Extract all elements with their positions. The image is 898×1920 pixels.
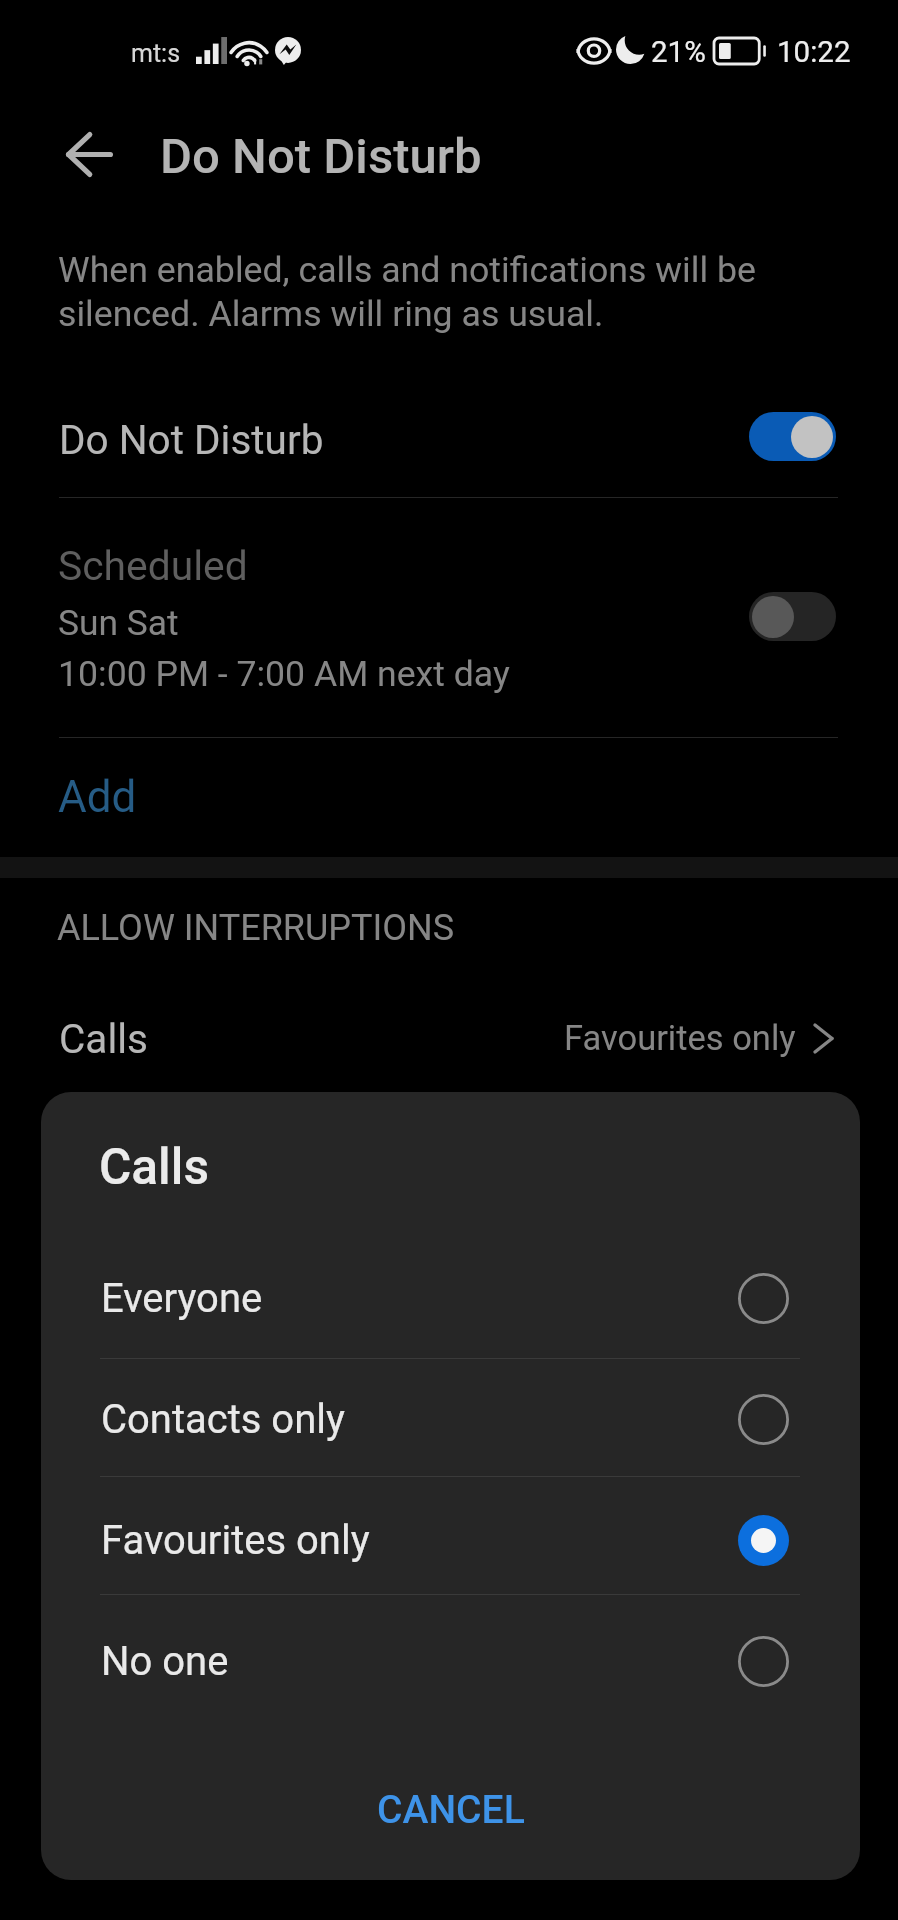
staticText: mt:s [131, 39, 181, 68]
button[interactable]: Schedule switch [749, 592, 836, 641]
staticText: Calls [99, 1138, 210, 1196]
staticText: Scheduled [58, 542, 248, 590]
staticText: CANCEL [377, 1787, 525, 1833]
button[interactable]: Contacts only [41, 1361, 860, 1477]
button[interactable]: Calls [0, 988, 898, 1088]
staticText: 10:00 PM - 7:00 AM next day [58, 653, 510, 695]
button[interactable]: Everyone [41, 1240, 860, 1356]
staticText: Sun Sat [58, 602, 179, 643]
staticText: Contacts only [101, 1396, 345, 1443]
staticText: 10:22 [777, 35, 851, 70]
staticText: No one [101, 1638, 229, 1685]
button[interactable]: CANCEL [41, 1765, 860, 1855]
staticText: Favourites only [564, 1018, 796, 1058]
button[interactable]: Add [0, 738, 898, 844]
staticText: When enabled, calls and notifications wi… [58, 249, 756, 335]
button[interactable]: Favourites only [41, 1482, 860, 1598]
staticText: 21% [651, 35, 706, 70]
staticText: ALLOW INTERRUPTIONS [57, 907, 455, 949]
button[interactable]: Back [54, 120, 125, 188]
staticText: Everyone [101, 1275, 263, 1322]
button[interactable]: Do Not Disturb [0, 388, 898, 491]
button[interactable]: No one [41, 1603, 860, 1719]
staticText: Do Not Disturb [59, 416, 324, 463]
button[interactable]: Do Not Disturb switch [749, 412, 836, 461]
staticText: Calls [59, 1015, 148, 1062]
staticText: Add [58, 771, 137, 823]
staticText: Do Not Disturb [160, 128, 482, 185]
staticText: Favourites only [101, 1517, 370, 1564]
